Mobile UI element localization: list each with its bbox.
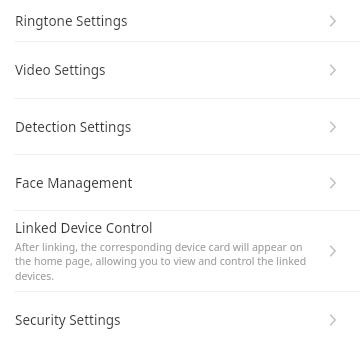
other: Open — [326, 120, 340, 134]
other: Open — [326, 63, 340, 77]
button[interactable]: Ringtone Settings — [0, 0, 360, 41]
button[interactable]: Linked Device Control — [0, 211, 360, 291]
staticText: Security Settings — [15, 311, 326, 329]
button[interactable]: Security Settings — [0, 292, 360, 348]
button[interactable]: Face Management — [0, 155, 360, 210]
staticText: After linking, the corresponding device … — [15, 240, 316, 283]
other: Open — [326, 244, 340, 258]
staticText: Ringtone Settings — [15, 12, 326, 30]
other: Open — [326, 313, 340, 327]
button[interactable]: Video Settings — [0, 42, 360, 98]
other: Open — [326, 14, 340, 28]
button[interactable]: Detection Settings — [0, 99, 360, 154]
staticText: Video Settings — [15, 61, 326, 79]
staticText: Face Management — [15, 174, 326, 192]
staticText: Detection Settings — [15, 118, 326, 136]
other: Open — [326, 176, 340, 190]
staticText: Linked Device Control — [15, 219, 153, 237]
